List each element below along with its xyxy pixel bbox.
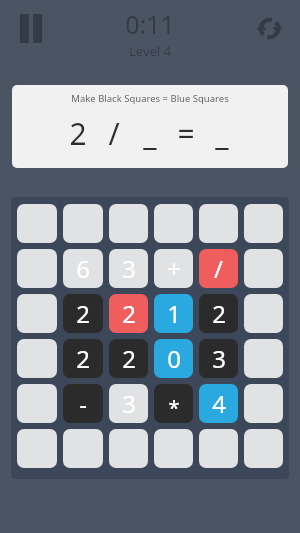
button[interactable]: *	[154, 384, 193, 423]
button[interactable]: 1	[154, 294, 193, 333]
button[interactable]: Empty tile	[244, 249, 283, 288]
button[interactable]: Empty tile	[244, 384, 283, 423]
button[interactable]: Empty tile	[154, 429, 193, 468]
button[interactable]: Empty tile	[17, 384, 57, 423]
button[interactable]: 4	[199, 384, 238, 423]
staticText: 2	[69, 113, 87, 154]
button[interactable]: 0	[154, 339, 193, 378]
staticText: 4	[212, 387, 226, 420]
staticText: 0	[167, 342, 181, 375]
staticText: 1	[167, 297, 181, 330]
staticText: 2	[122, 342, 136, 375]
button[interactable]: Empty tile	[109, 204, 148, 243]
button[interactable]: Empty tile	[17, 204, 57, 243]
button[interactable]: Empty tile	[244, 429, 283, 468]
staticText: _	[143, 113, 157, 154]
button[interactable]: Empty tile	[154, 204, 193, 243]
staticText: 2	[212, 297, 226, 330]
staticText: 0:11	[125, 7, 175, 41]
button[interactable]: 2	[63, 294, 103, 333]
staticText: Level 4	[129, 42, 171, 60]
button[interactable]: 2	[109, 294, 148, 333]
staticText: /	[108, 113, 120, 154]
button[interactable]: 3	[109, 384, 148, 423]
staticText: -	[79, 387, 87, 420]
button[interactable]: Empty tile	[63, 429, 103, 468]
button[interactable]: Empty tile	[17, 294, 57, 333]
button[interactable]: Empty tile	[244, 339, 283, 378]
button[interactable]: 2	[63, 339, 103, 378]
staticText: 3	[122, 252, 136, 285]
button[interactable]: Empty tile	[244, 294, 283, 333]
button[interactable]: +	[154, 249, 193, 288]
button[interactable]: -	[63, 384, 103, 423]
button[interactable]: Empty tile	[17, 339, 57, 378]
staticText: 3	[122, 387, 136, 420]
button[interactable]: Empty tile	[199, 429, 238, 468]
staticText: 3	[212, 342, 226, 375]
button[interactable]: Empty tile	[109, 429, 148, 468]
button[interactable]: 3	[109, 249, 148, 288]
button[interactable]: 3	[199, 339, 238, 378]
button[interactable]: Empty tile	[63, 204, 103, 243]
staticText: =	[177, 113, 195, 154]
staticText: _	[215, 113, 229, 154]
button[interactable]: Empty tile	[244, 204, 283, 243]
staticText: Make Black Squares = Blue Squares	[12, 92, 288, 105]
button[interactable]: 2	[199, 294, 238, 333]
staticText: 2	[76, 297, 90, 330]
staticText: 2	[76, 342, 90, 375]
button[interactable]: Pause	[10, 8, 52, 48]
button[interactable]: Empty tile	[17, 249, 57, 288]
button[interactable]: Empty tile	[17, 429, 57, 468]
button[interactable]: Empty tile	[199, 204, 238, 243]
button[interactable]: 6	[63, 249, 103, 288]
staticText: *	[168, 394, 180, 421]
button[interactable]: Make Black Squares = Blue Squares	[12, 85, 288, 168]
staticText: 6	[76, 252, 90, 285]
button[interactable]: /	[199, 249, 238, 288]
button[interactable]: Restart	[248, 8, 290, 48]
staticText: +	[167, 252, 181, 285]
staticText: /	[214, 252, 223, 285]
staticText: 2	[122, 297, 136, 330]
button[interactable]: 2	[109, 339, 148, 378]
